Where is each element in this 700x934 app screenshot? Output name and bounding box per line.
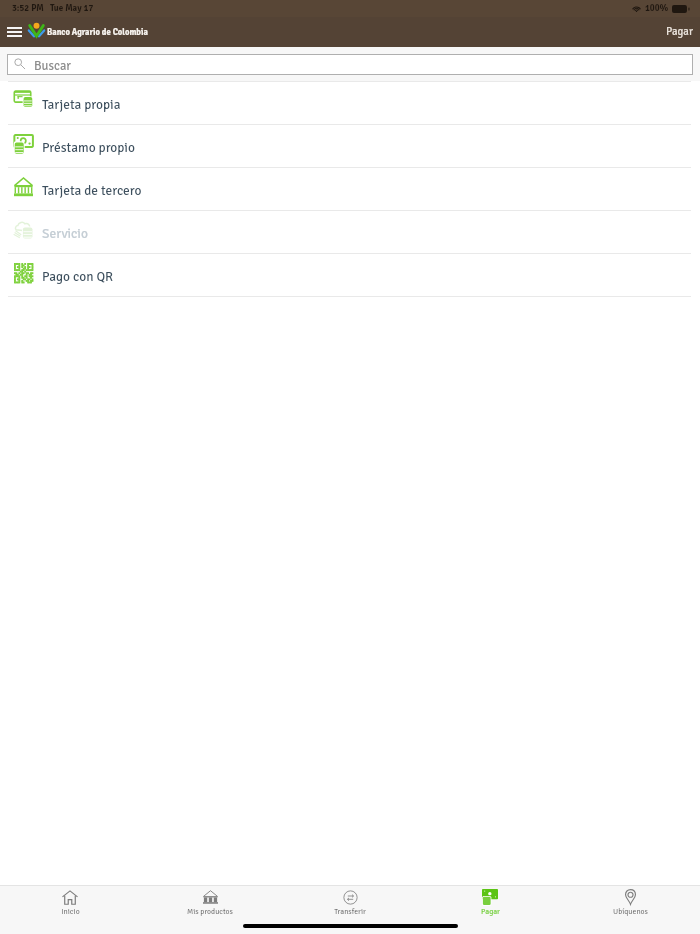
button[interactable]: Préstamo propio	[0, 125, 700, 167]
staticText: Préstamo propio	[42, 139, 135, 156]
staticText: 100%	[645, 3, 669, 14]
button[interactable]: Inicio	[0, 886, 140, 934]
staticText: Ubíquenos	[613, 907, 648, 916]
button[interactable]: Mis productos	[140, 886, 280, 934]
staticText: 3:52 PM	[12, 3, 44, 14]
staticText: Buscar	[34, 58, 71, 74]
button[interactable]: Buscar	[7, 54, 693, 75]
button[interactable]: Pagar	[420, 886, 560, 934]
button[interactable]: Transferir	[280, 886, 420, 934]
staticText: Mis productos	[187, 907, 233, 916]
staticText: Transferir	[334, 907, 366, 916]
staticText: Pagar	[481, 907, 500, 916]
button[interactable]: Servicio	[0, 211, 700, 253]
button[interactable]: Pagar	[659, 17, 700, 47]
button[interactable]: Tarjeta de tercero	[0, 168, 700, 210]
button[interactable]: Ubíquenos	[560, 886, 700, 934]
button[interactable]: Tarjeta propia	[0, 82, 700, 124]
staticText: Pago con QR	[42, 268, 114, 285]
staticText: Tarjeta propia	[42, 96, 121, 113]
button[interactable]: Pago con QR	[0, 254, 700, 296]
staticText: Tarjeta de tercero	[42, 182, 142, 199]
staticText: Tue May 17	[50, 3, 94, 14]
button[interactable]: Menu	[2, 17, 26, 47]
staticText: Servicio	[42, 225, 88, 242]
staticText: Inicio	[61, 907, 80, 916]
staticText: Pagar	[666, 25, 693, 39]
staticText: Banco Agrario de Colombia	[47, 27, 148, 38]
